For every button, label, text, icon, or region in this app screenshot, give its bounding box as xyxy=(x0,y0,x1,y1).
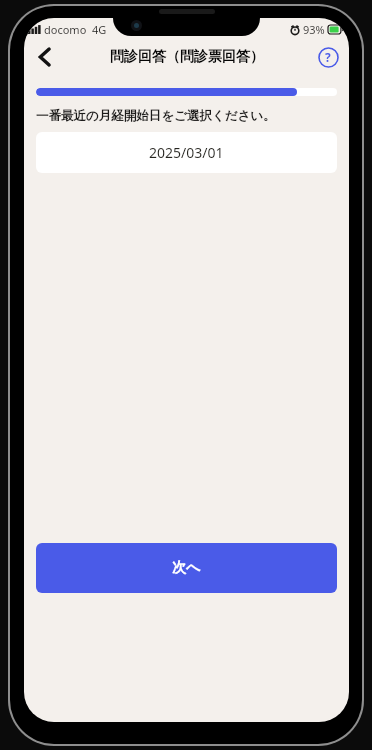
staticText: ? xyxy=(325,49,331,65)
button[interactable]: 次へ xyxy=(36,543,337,593)
button[interactable]: 2025/03/01 xyxy=(36,132,337,173)
staticText: 93% xyxy=(303,22,325,37)
staticText: 4G xyxy=(92,22,107,37)
button[interactable]: Back xyxy=(24,40,64,74)
staticText: 一番最近の月経開始日をご選択ください。 xyxy=(36,108,276,124)
staticText: docomo xyxy=(44,22,87,37)
staticText: 問診回答（問診票回答） xyxy=(110,48,264,66)
button[interactable]: Help xyxy=(311,40,345,74)
staticText: 次へ xyxy=(172,559,201,577)
staticText: 2025/03/01 xyxy=(149,143,224,162)
